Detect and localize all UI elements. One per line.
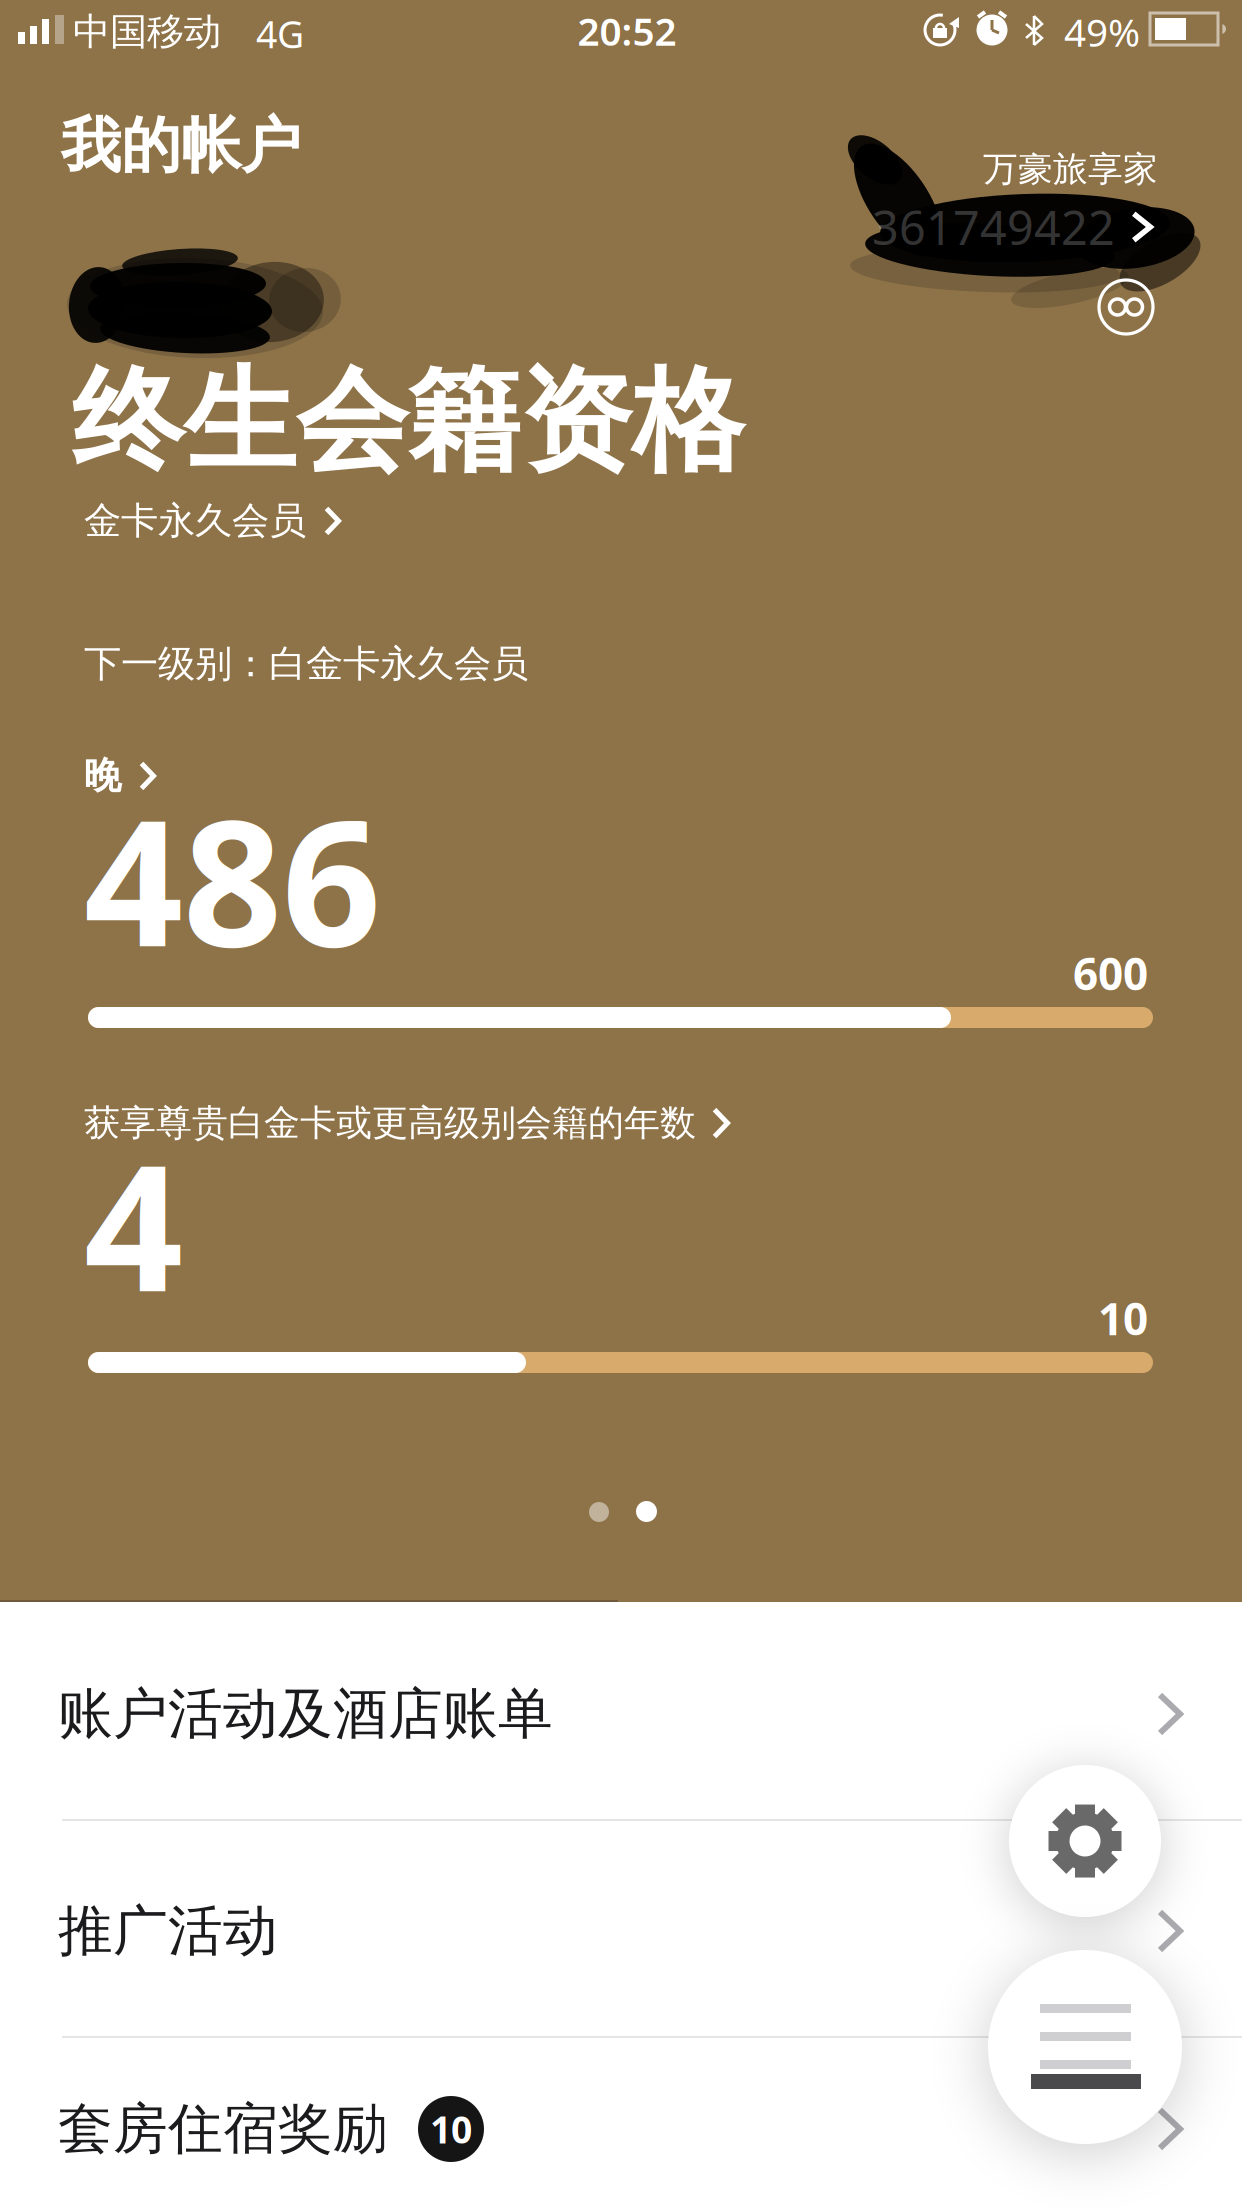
button[interactable]: 推广活动: [0, 1823, 1242, 2039]
button[interactable]: 套房住宿奖励: [0, 2044, 1242, 2208]
staticText: 361749422: [872, 196, 1115, 258]
button[interactable]: 晚: [84, 753, 156, 799]
button[interactable]: Settings: [1009, 1765, 1161, 1917]
staticText: 晚: [84, 753, 121, 799]
staticText: 账户活动及酒店账单: [58, 1680, 553, 1747]
staticText: 套房住宿奖励: [58, 2095, 388, 2162]
button[interactable]: 账户活动及酒店账单: [0, 1605, 1242, 1823]
staticText: 10: [430, 2104, 472, 2154]
button[interactable]: 获享尊贵白金卡或更高级别会籍的年数: [84, 1101, 730, 1145]
staticText: 600: [1073, 944, 1148, 1002]
staticText: 4: [84, 1109, 183, 1339]
staticText: 10: [1098, 1289, 1148, 1347]
staticText: 49%: [1064, 6, 1140, 57]
staticText: 金卡永久会员: [84, 498, 306, 544]
staticText: 万豪旅享家: [983, 148, 1158, 191]
button[interactable]: Menu: [988, 1950, 1182, 2144]
staticText: 20:52: [577, 5, 676, 56]
button[interactable]: 361749422: [872, 196, 1153, 258]
staticText: 获享尊贵白金卡或更高级别会籍的年数: [84, 1101, 696, 1145]
button[interactable]: Marriott Bonvoy: [1097, 278, 1155, 336]
staticText: 终生会籍资格: [72, 353, 744, 491]
staticText: 下一级别：白金卡永久会员: [84, 641, 528, 687]
staticText: 中国移动: [73, 9, 221, 55]
button[interactable]: 金卡永久会员: [84, 498, 341, 544]
staticText: 我的帐户: [61, 109, 301, 183]
staticText: 4G: [256, 9, 304, 59]
staticText: 推广活动: [58, 1897, 278, 1964]
staticText: 486: [84, 764, 381, 994]
